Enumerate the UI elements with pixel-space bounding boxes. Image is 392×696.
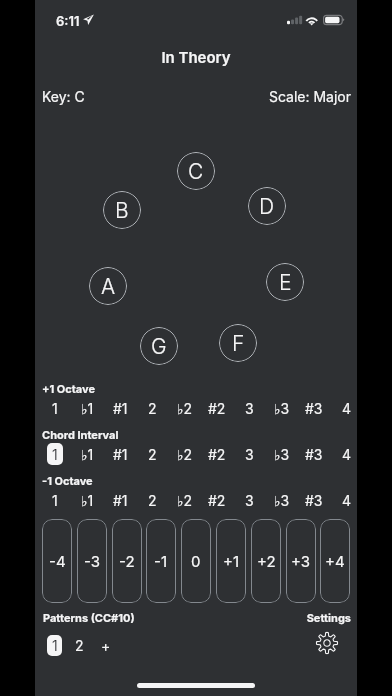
staticText: 2	[148, 400, 157, 417]
staticText: 2	[148, 492, 157, 509]
button[interactable]: ♭1	[73, 443, 101, 465]
staticText: ♭1	[81, 446, 94, 463]
button[interactable]: D	[248, 187, 286, 225]
staticText: E	[279, 270, 292, 295]
staticText: 6:11	[56, 13, 80, 29]
staticText: -2	[119, 552, 135, 570]
staticText: ♭2	[177, 492, 193, 509]
button[interactable]: +1	[216, 519, 246, 603]
staticText: Scale: Major	[35, 88, 351, 105]
button[interactable]: 1	[47, 443, 63, 465]
button[interactable]: #2	[203, 489, 231, 511]
staticText: #1	[113, 492, 128, 509]
button[interactable]: +2	[251, 519, 281, 603]
staticText: #3	[305, 492, 323, 509]
staticText: +2	[257, 552, 276, 570]
button[interactable]: -3	[77, 519, 107, 603]
staticText: 1	[52, 637, 58, 654]
button[interactable]: #2	[203, 443, 231, 465]
staticText: ♭1	[81, 400, 94, 417]
staticText: #2	[208, 400, 226, 417]
button[interactable]: 4	[333, 443, 361, 465]
staticText: B	[115, 198, 129, 223]
staticText: 3	[245, 492, 254, 509]
button[interactable]: ♭2	[171, 397, 199, 419]
staticText: #1	[113, 400, 128, 417]
button[interactable]: B	[103, 191, 141, 229]
staticText: #2	[208, 446, 226, 463]
staticText: ♭1	[81, 492, 94, 509]
staticText: +1	[223, 552, 240, 570]
button[interactable]: 2	[138, 489, 166, 511]
staticText: #1	[113, 446, 128, 463]
staticText: ♭2	[177, 446, 193, 463]
staticText: #3	[305, 400, 323, 417]
button[interactable]: 2	[69, 635, 90, 656]
button[interactable]: ♭2	[171, 489, 199, 511]
staticText: C	[188, 159, 204, 184]
button[interactable]: F	[219, 324, 257, 362]
staticText: ♭3	[274, 492, 290, 509]
staticText: 1	[52, 400, 58, 417]
button[interactable]: #1	[106, 489, 134, 511]
button[interactable]: 4	[333, 489, 361, 511]
button[interactable]: #1	[106, 443, 134, 465]
button[interactable]: ♭1	[73, 489, 101, 511]
button[interactable]: 3	[235, 443, 263, 465]
staticText: -1 Octave	[42, 474, 93, 487]
button[interactable]: ♭3	[268, 443, 296, 465]
staticText: -3	[84, 552, 100, 570]
button[interactable]: 2	[138, 443, 166, 465]
staticText: 2	[75, 637, 84, 654]
button[interactable]: ♭3	[268, 397, 296, 419]
button[interactable]: ♭2	[171, 443, 199, 465]
button[interactable]: 0	[181, 519, 211, 603]
button[interactable]: #3	[300, 443, 328, 465]
staticText: ♭3	[274, 400, 290, 417]
staticText: 3	[245, 446, 254, 463]
staticText: +1 Octave	[42, 382, 95, 395]
button[interactable]: +	[95, 635, 116, 656]
button[interactable]: 4	[333, 397, 361, 419]
staticText: ♭3	[274, 446, 290, 463]
button[interactable]: Settings	[313, 629, 341, 657]
button[interactable]: +4	[320, 519, 350, 603]
button[interactable]: -2	[112, 519, 142, 603]
staticText: +4	[325, 552, 345, 570]
button[interactable]: 3	[235, 397, 263, 419]
staticText: 4	[342, 446, 352, 463]
staticText: 4	[342, 400, 352, 417]
staticText: A	[101, 274, 116, 299]
button[interactable]: 3	[235, 489, 263, 511]
button[interactable]: #3	[300, 489, 328, 511]
button[interactable]: 2	[138, 397, 166, 419]
staticText: Patterns (CC#10)	[43, 611, 135, 624]
staticText: Chord Interval	[42, 428, 119, 441]
staticText: -1	[154, 552, 168, 570]
staticText: +	[101, 637, 111, 654]
button[interactable]: ♭1	[73, 397, 101, 419]
staticText: Settings	[35, 611, 351, 624]
button[interactable]: #1	[106, 397, 134, 419]
button[interactable]: +3	[286, 519, 316, 603]
button[interactable]: 1	[47, 635, 62, 656]
button[interactable]: #2	[203, 397, 231, 419]
staticText: -4	[49, 552, 66, 570]
button[interactable]: C	[177, 152, 215, 190]
button[interactable]: 1	[41, 489, 69, 511]
button[interactable]: -4	[42, 519, 72, 603]
button[interactable]: #3	[300, 397, 328, 419]
staticText: 1	[52, 492, 58, 509]
staticText: 4	[342, 492, 352, 509]
button[interactable]: A	[89, 267, 127, 305]
button[interactable]: G	[140, 327, 178, 365]
button[interactable]: E	[266, 263, 304, 301]
staticText: G	[151, 334, 167, 359]
staticText: 3	[245, 400, 254, 417]
staticText: 2	[148, 446, 157, 463]
staticText: #2	[208, 492, 226, 509]
button[interactable]: ♭3	[268, 489, 296, 511]
button[interactable]: 1	[41, 397, 69, 419]
button[interactable]: -1	[146, 519, 176, 603]
staticText: +3	[291, 552, 311, 570]
